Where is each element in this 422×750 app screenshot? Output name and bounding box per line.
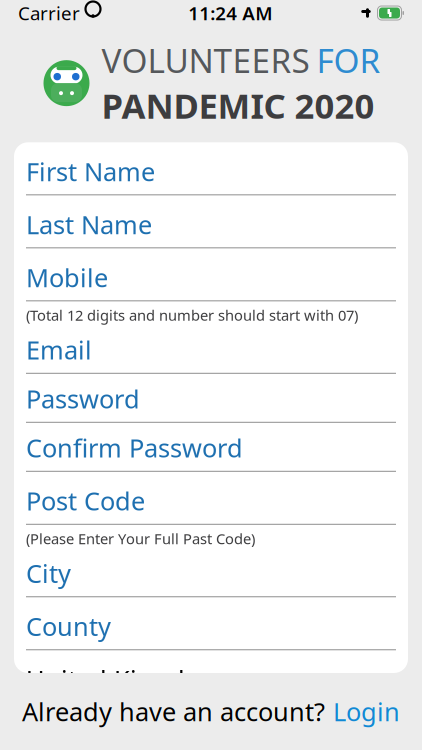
button[interactable]: Confirm Password xyxy=(26,435,396,488)
button[interactable]: Mobile xyxy=(26,264,396,305)
button[interactable]: Email xyxy=(26,337,396,386)
staticText: Post Code xyxy=(26,484,145,518)
staticText: First Name xyxy=(26,154,155,188)
staticText: VOLUNTEERS xyxy=(101,38,309,82)
button[interactable]: Login xyxy=(333,695,400,728)
button[interactable]: Post Code xyxy=(26,488,396,529)
staticText: PANDEMIC 2020 xyxy=(101,82,374,128)
staticText: United Kingdom xyxy=(26,662,224,696)
button[interactable]: City xyxy=(26,560,396,613)
staticText: (Total 12 digits and number should start… xyxy=(26,305,358,325)
staticText: (Please Enter Your Full Past Code) xyxy=(26,529,255,548)
staticText: Confirm Password xyxy=(26,431,243,465)
button[interactable]: United Kingdom xyxy=(26,666,396,692)
staticText: Password xyxy=(26,382,140,416)
staticText: 11:24 AM xyxy=(188,1,272,25)
staticText: City xyxy=(26,556,71,590)
button[interactable]: Last Name xyxy=(26,211,396,264)
staticText: Already have an account? xyxy=(22,695,325,728)
staticText: FOR xyxy=(316,38,380,82)
staticText: Email xyxy=(26,333,92,367)
staticText: Login xyxy=(333,695,400,728)
staticText: Mobile xyxy=(26,260,108,294)
button[interactable]: County xyxy=(26,613,396,666)
button[interactable]: First Name xyxy=(26,158,396,211)
staticText: Carrier xyxy=(18,1,80,25)
button[interactable]: Password xyxy=(26,386,396,435)
staticText: County xyxy=(26,609,111,643)
staticText: Last Name xyxy=(26,207,152,241)
